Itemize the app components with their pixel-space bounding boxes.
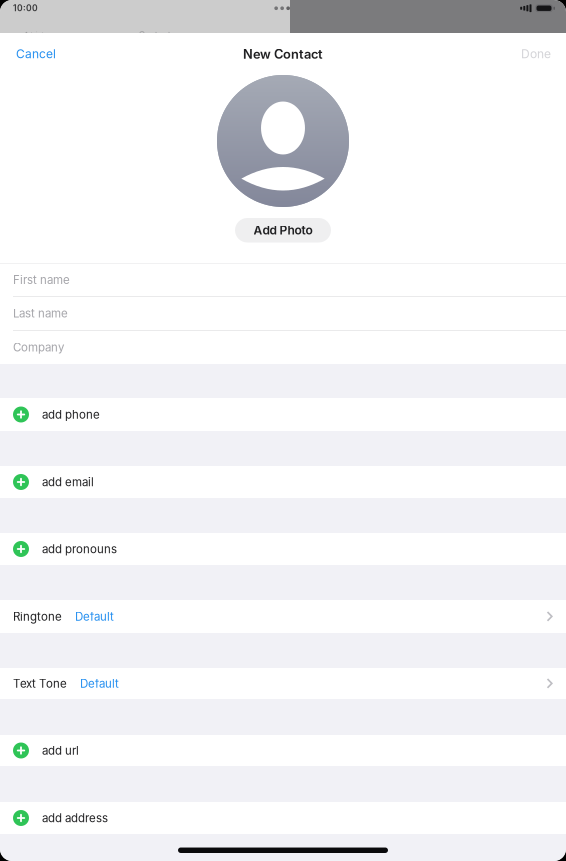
button[interactable]: Add Photo [217,75,349,242]
button[interactable]: Ringtone [0,600,566,633]
staticText: add pronouns [42,542,117,556]
staticText: Done [521,47,551,61]
staticText: Company [13,340,64,354]
staticText: 10:00 [13,3,38,13]
staticText: add url [42,744,79,757]
staticText: Ringtone [13,610,62,623]
staticText: Add Photo [253,223,312,237]
staticText: add address [42,811,108,825]
staticText: First name [13,273,70,287]
staticText: add email [42,475,94,489]
staticText: Contacts [139,30,176,40]
button[interactable]: add address [0,802,566,834]
button[interactable]: add phone [0,398,566,431]
staticText: New Contact [243,46,323,62]
button[interactable]: add email [0,466,566,498]
button[interactable]: add pronouns [0,533,566,565]
button[interactable]: add url [0,735,566,766]
staticText: Cancel [16,47,56,61]
staticText: + [266,29,272,41]
staticText: add phone [42,408,100,421]
button[interactable]: Done [509,33,566,75]
staticText: Last name [13,306,68,320]
staticText: Text Tone [13,677,67,690]
staticText: Default [80,677,119,690]
button[interactable]: Cancel [0,33,68,75]
button[interactable]: Text Tone [0,668,566,699]
staticText: Lists [30,30,48,40]
staticText: Default [75,610,114,623]
